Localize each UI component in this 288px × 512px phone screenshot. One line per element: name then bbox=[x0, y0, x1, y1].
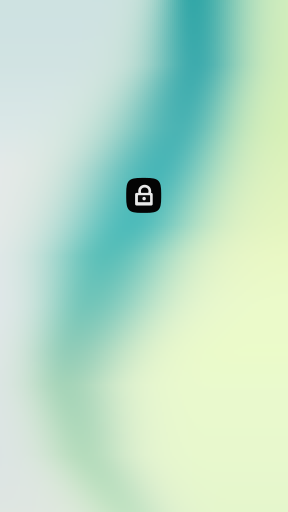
button[interactable]: Unlock bbox=[126, 178, 161, 213]
